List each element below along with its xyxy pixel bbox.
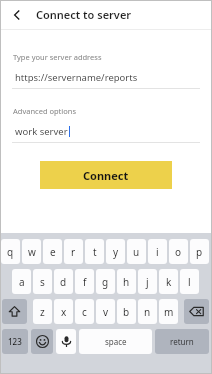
- button[interactable]: v: [96, 299, 115, 324]
- button[interactable]: b: [117, 299, 136, 324]
- button[interactable]: p: [190, 239, 209, 264]
- staticText: f: [83, 275, 87, 289]
- staticText: h: [123, 275, 130, 289]
- button[interactable]: r: [64, 239, 83, 264]
- button[interactable]: i: [148, 239, 167, 264]
- button[interactable]: z: [33, 299, 52, 324]
- staticText: a: [19, 275, 25, 289]
- staticText: 123: [8, 336, 22, 347]
- button[interactable]: Emoji: [31, 329, 53, 354]
- staticText: e: [50, 245, 56, 259]
- button[interactable]: space: [79, 329, 152, 354]
- button[interactable]: y: [106, 239, 125, 264]
- button[interactable]: Shift: [2, 299, 27, 324]
- button[interactable]: 123: [2, 329, 28, 354]
- staticText: y: [113, 245, 119, 259]
- staticText: i: [156, 245, 159, 259]
- staticText: u: [133, 245, 140, 259]
- button[interactable]: o: [169, 239, 188, 264]
- button[interactable]: s: [33, 269, 52, 294]
- button[interactable]: t: [85, 239, 104, 264]
- staticText: s: [40, 275, 45, 289]
- button[interactable]: m: [159, 299, 178, 324]
- button[interactable]: Back: [6, 4, 28, 26]
- button[interactable]: https://servername/reports: [0, 70, 212, 85]
- button[interactable]: q: [1, 239, 20, 264]
- button[interactable]: return: [155, 329, 209, 354]
- staticText: j: [146, 275, 149, 289]
- button[interactable]: n: [138, 299, 157, 324]
- button[interactable]: f: [75, 269, 94, 294]
- staticText: b: [123, 305, 130, 319]
- button[interactable]: w: [22, 239, 41, 264]
- staticText: z: [40, 305, 45, 319]
- staticText: m: [164, 305, 174, 319]
- button[interactable]: d: [54, 269, 73, 294]
- staticText: q: [7, 245, 14, 259]
- button[interactable]: c: [75, 299, 94, 324]
- staticText: d: [60, 275, 67, 289]
- staticText: n: [144, 305, 151, 319]
- staticText: r: [71, 245, 76, 259]
- button[interactable]: u: [127, 239, 146, 264]
- staticText: return: [170, 336, 194, 347]
- staticText: p: [196, 245, 203, 259]
- button[interactable]: h: [117, 269, 136, 294]
- staticText: space: [105, 336, 127, 347]
- button[interactable]: g: [96, 269, 115, 294]
- staticText: v: [103, 305, 109, 319]
- staticText: o: [175, 245, 182, 259]
- button[interactable]: Connect: [40, 161, 172, 189]
- staticText: Type your server address: [13, 52, 102, 62]
- button[interactable]: k: [159, 269, 178, 294]
- button[interactable]: Backspace: [184, 299, 209, 324]
- staticText: c: [82, 305, 87, 319]
- button[interactable]: a: [12, 269, 31, 294]
- button[interactable]: x: [54, 299, 73, 324]
- button[interactable]: j: [138, 269, 157, 294]
- button[interactable]: l: [180, 269, 199, 294]
- staticText: x: [61, 305, 67, 319]
- button[interactable]: Voice input: [56, 329, 76, 354]
- staticText: g: [102, 275, 109, 289]
- staticText: work server: [15, 125, 68, 138]
- staticText: Connect to server: [36, 7, 132, 22]
- staticText: l: [188, 275, 191, 289]
- staticText: t: [93, 245, 97, 259]
- staticText: k: [166, 275, 172, 289]
- button[interactable]: work server: [0, 124, 212, 139]
- staticText: Advanced options: [13, 106, 77, 116]
- staticText: https://servername/reports: [15, 71, 138, 84]
- staticText: Connect: [83, 168, 129, 183]
- button[interactable]: e: [43, 239, 62, 264]
- staticText: w: [28, 245, 36, 259]
